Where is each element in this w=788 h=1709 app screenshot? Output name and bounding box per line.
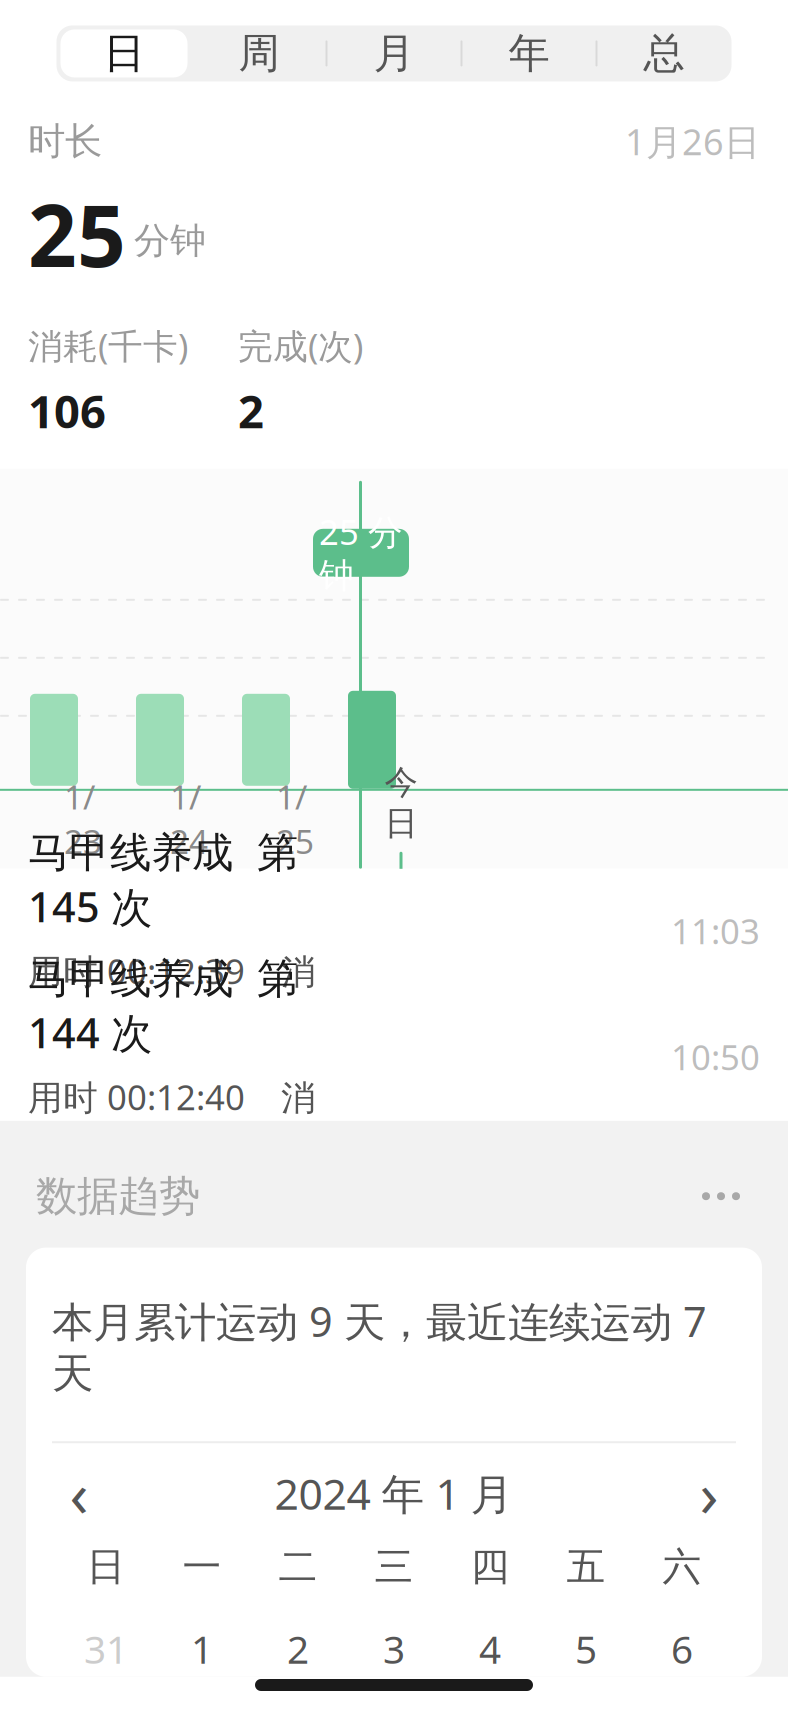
staticText: › — [699, 1452, 718, 1534]
button[interactable]: 年 — [461, 25, 596, 81]
button[interactable]: 总 — [596, 25, 731, 81]
button[interactable]: 更多 — [690, 1174, 752, 1218]
staticText: 5 — [575, 1623, 597, 1674]
button[interactable]: 1 — [154, 1621, 250, 1677]
staticText: 四 — [470, 1543, 509, 1591]
button[interactable]: 6 — [634, 1621, 730, 1677]
staticText: 31 — [84, 1623, 128, 1674]
staticText: 1月26日 — [625, 117, 760, 165]
staticText: 五 — [566, 1543, 605, 1591]
staticText: 数据趋势 — [36, 1171, 200, 1222]
staticText: 六 — [662, 1543, 701, 1591]
staticText: 消耗(千卡) — [28, 323, 188, 369]
staticText: 分钟 — [134, 219, 206, 263]
button[interactable]: 周 — [191, 25, 326, 81]
staticText: 日 — [103, 28, 144, 79]
staticText: 年 — [508, 28, 549, 79]
button[interactable]: 31 — [58, 1621, 154, 1677]
staticText: 1/24 — [170, 774, 208, 863]
staticText: 一 — [182, 1543, 221, 1591]
button[interactable]: 马甲线养成 第 144 次 — [0, 995, 788, 1121]
staticText: 25 — [28, 177, 126, 291]
staticText: 三 — [374, 1543, 413, 1591]
staticText: 25 分钟 — [319, 508, 403, 597]
staticText: 二 — [278, 1543, 317, 1591]
staticText: 2 — [238, 381, 264, 441]
staticText: 用时 00:12:39 消耗 53 千卡 — [28, 948, 316, 1040]
staticText: 本月累计运动 9 天，最近连续运动 7 天 — [52, 1294, 707, 1399]
button[interactable]: 2 — [250, 1621, 346, 1677]
button[interactable]: 日 — [56, 25, 191, 81]
staticText: 1/25 — [276, 774, 314, 863]
staticText: 完成(次) — [238, 323, 363, 369]
button[interactable]: 月 — [326, 25, 461, 81]
button[interactable]: 4 — [442, 1621, 538, 1677]
staticText: 11:03 — [671, 908, 760, 954]
staticText: 4 — [479, 1623, 501, 1674]
staticText: 周 — [238, 28, 279, 79]
staticText: 2 — [287, 1623, 309, 1674]
button[interactable]: 3 — [346, 1621, 442, 1677]
staticText: 马甲线养成 第 144 次 — [28, 950, 298, 1060]
staticText: 月 — [373, 28, 414, 79]
staticText: 1/23 — [64, 774, 102, 863]
staticText: 106 — [28, 381, 106, 441]
staticText: 日 — [86, 1543, 125, 1591]
staticText: 用时 00:12:40 消耗 53 千卡 — [28, 1074, 316, 1166]
staticText: 马甲线养成 第 145 次 — [28, 824, 298, 934]
staticText: 时长 — [28, 118, 102, 164]
staticText: 6 — [671, 1623, 693, 1674]
staticText: 2024 年 1 月 — [274, 1465, 513, 1522]
button[interactable]: 5 — [538, 1621, 634, 1677]
button[interactable]: 下个月 — [682, 1466, 736, 1520]
staticText: 10:50 — [671, 1034, 760, 1080]
staticText: 1 — [191, 1623, 213, 1674]
button[interactable]: 马甲线养成 第 145 次 — [0, 869, 788, 995]
staticText: 3 — [383, 1623, 405, 1674]
button[interactable]: 上个月 — [52, 1466, 106, 1520]
staticText: 总 — [643, 28, 684, 79]
staticText: 今日 — [384, 762, 417, 844]
staticText: ‹ — [69, 1452, 88, 1534]
